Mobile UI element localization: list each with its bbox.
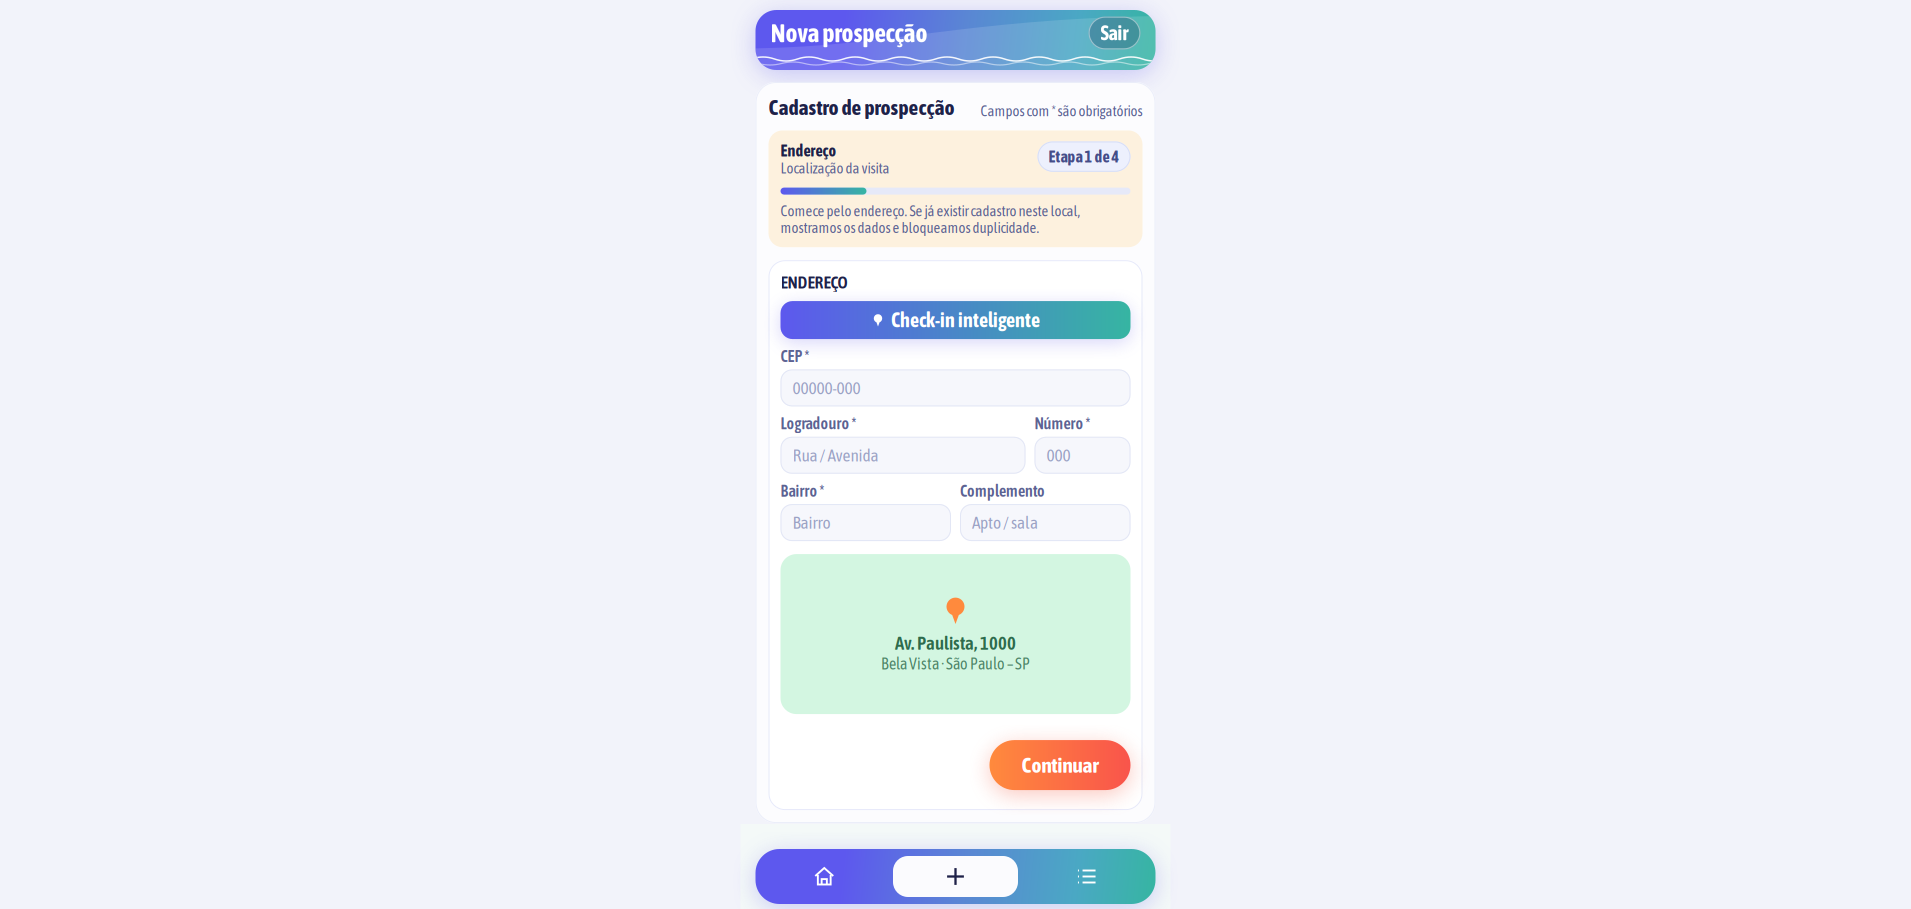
button[interactable]: Sair	[1088, 16, 1140, 49]
staticText: 000	[1046, 445, 1070, 465]
staticText: ENDEREÇO	[780, 272, 847, 292]
staticText: Bairro *	[780, 482, 824, 500]
staticText: CEP *	[780, 347, 809, 365]
staticText: Localização da visita	[780, 160, 889, 177]
staticText: Check-in inteligente	[891, 309, 1040, 331]
staticText: Rua / Avenida	[792, 445, 878, 465]
button[interactable]: Início	[755, 849, 893, 904]
staticText: Logradouro *	[780, 414, 856, 433]
staticText: Av. Paulista, 1000	[895, 632, 1016, 654]
button[interactable]: Continuar	[989, 740, 1130, 790]
staticText: Sair	[1100, 21, 1128, 44]
button[interactable]: Check-in inteligente	[780, 301, 1130, 339]
staticText: Bairro	[792, 513, 830, 532]
staticText: Endereço	[780, 141, 836, 160]
staticText: Bela Vista · São Paulo – SP	[881, 655, 1030, 673]
staticText: 00000-000	[792, 378, 860, 398]
button[interactable]: Nova prospecção	[893, 849, 1018, 904]
staticText: Cadastro de prospecção	[768, 95, 954, 119]
staticText: Nova prospecção	[770, 18, 927, 47]
staticText: Continuar	[1021, 753, 1098, 777]
staticText: Etapa 1 de 4	[1048, 147, 1119, 166]
staticText: Comece pelo endereço. Se já existir cada…	[780, 203, 1080, 236]
staticText: Apto / sala	[972, 513, 1038, 532]
staticText: Complemento	[960, 482, 1045, 500]
button[interactable]: Listagem	[1018, 849, 1155, 904]
staticText: Número *	[1034, 414, 1090, 433]
staticText: Campos com * são obrigatórios	[980, 103, 1142, 119]
